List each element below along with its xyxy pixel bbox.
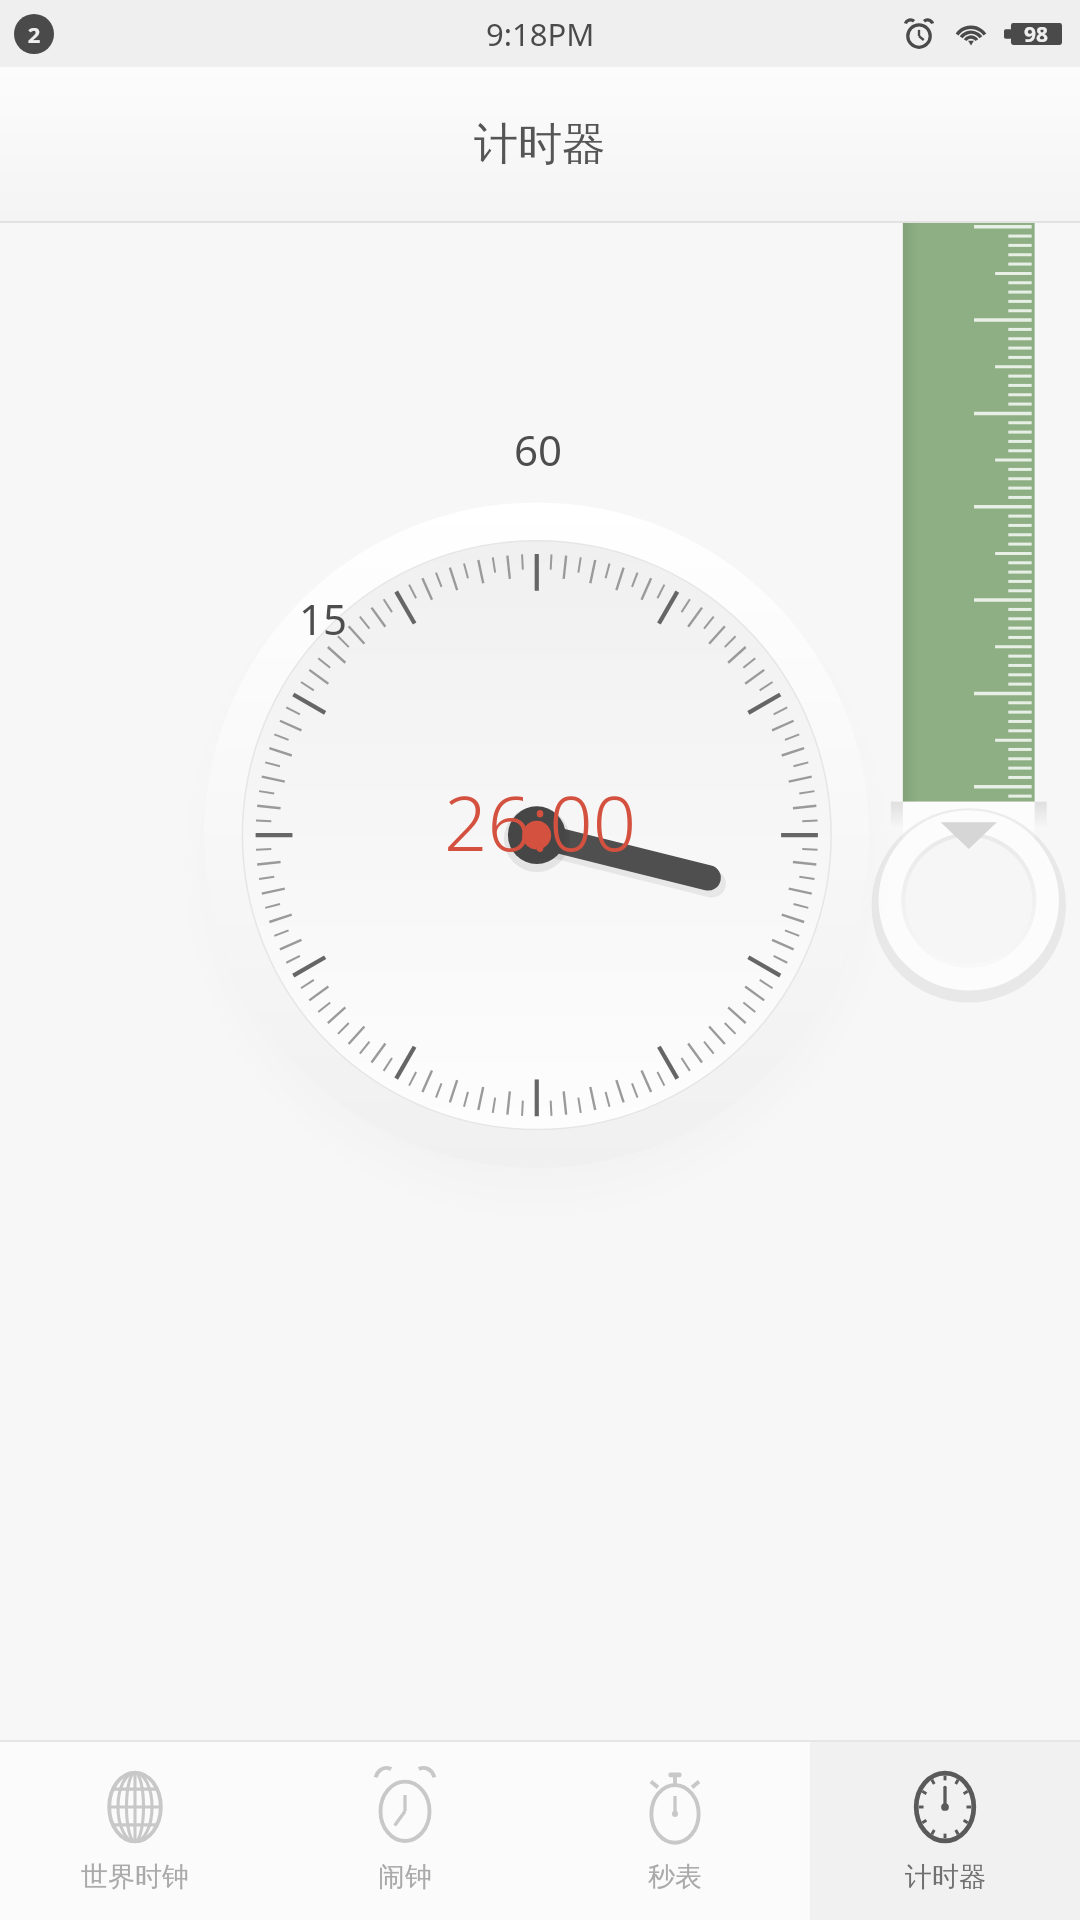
staticText: 计时器 <box>905 1860 986 1894</box>
staticText: 9:18PM <box>486 13 595 55</box>
staticText: 15 <box>299 590 348 647</box>
staticText: 世界时钟 <box>81 1860 189 1894</box>
button[interactable]: 秒表 <box>540 1742 810 1920</box>
button[interactable]: 计时器 <box>810 1742 1080 1920</box>
staticText: 计时器 <box>474 117 606 172</box>
staticText: 2 <box>14 19 54 49</box>
staticText: 闹钟 <box>378 1860 432 1894</box>
staticText: 秒表 <box>648 1860 702 1894</box>
staticText: 26:00 <box>444 770 637 874</box>
staticText: 98 <box>1024 20 1049 49</box>
button[interactable]: 闹钟 <box>270 1742 540 1920</box>
button[interactable]: 世界时钟 <box>0 1742 270 1920</box>
button[interactable]: Timer dial <box>0 223 1080 1740</box>
staticText: 60 <box>514 421 563 478</box>
